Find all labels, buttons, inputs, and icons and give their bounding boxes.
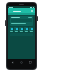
button[interactable]: Shortcut 4 xyxy=(24,27,28,32)
button[interactable]: Home xyxy=(20,61,23,64)
button[interactable]: Shortcut 1 xyxy=(10,27,13,32)
button[interactable]: Back xyxy=(11,61,14,64)
button[interactable] xyxy=(10,16,33,26)
button[interactable]: Shortcut 2 xyxy=(14,27,18,32)
button[interactable]: Shortcut 5 xyxy=(29,27,33,32)
button[interactable]: Menu xyxy=(8,8,35,13)
button[interactable]: Recents xyxy=(29,61,32,64)
button[interactable]: Shortcut 3 xyxy=(19,27,23,32)
